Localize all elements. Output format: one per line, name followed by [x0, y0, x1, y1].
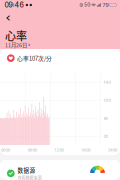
staticText: 60 — [103, 116, 108, 121]
button[interactable]: Back — [2, 13, 14, 23]
staticText: 12:00 — [54, 148, 63, 152]
staticText: 00:00 — [1, 148, 10, 152]
button[interactable]: 11月26日 — [5, 40, 30, 49]
staticText: 24:00 — [108, 148, 117, 152]
staticText: 数据源 — [18, 166, 36, 174]
staticText: 11月26日 — [5, 41, 27, 49]
button[interactable]: 数据源 — [0, 160, 120, 180]
staticText: 140 — [103, 80, 111, 85]
staticText: 心率107次/分 — [17, 54, 52, 62]
staticText: 5G — [84, 2, 90, 8]
staticText: 18:00 — [81, 148, 90, 152]
staticText: 查看数据来源 — [18, 174, 42, 180]
staticText: 100 — [103, 98, 111, 103]
staticText: 心率 — [5, 27, 27, 43]
staticText: 06:00 — [28, 148, 37, 152]
staticText: 79 — [103, 2, 109, 8]
staticText: 20 — [103, 134, 108, 139]
staticText: 09:46 — [4, 1, 23, 9]
